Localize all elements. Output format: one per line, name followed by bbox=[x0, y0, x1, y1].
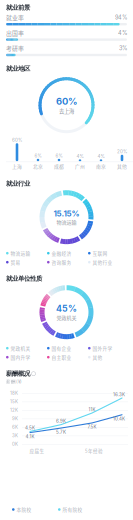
staticText: 其他行业 bbox=[92, 259, 112, 266]
staticText: 互联网 bbox=[92, 250, 107, 257]
staticText: 12K bbox=[10, 407, 18, 413]
staticText: 成都 bbox=[54, 163, 64, 170]
staticText: 就业率 bbox=[6, 13, 24, 22]
staticText: 贸易 bbox=[10, 259, 20, 266]
staticText: 4% bbox=[97, 154, 104, 159]
staticText: 60% bbox=[56, 96, 77, 107]
staticText: 上海 bbox=[12, 163, 22, 170]
staticText: 党政机关 bbox=[56, 314, 76, 321]
staticText: 应届生 bbox=[29, 447, 44, 454]
staticText: 北京 bbox=[33, 163, 43, 170]
staticText: 94% bbox=[115, 14, 127, 21]
staticText: 薪酬(¥) bbox=[6, 379, 22, 384]
staticText: 其他 bbox=[92, 354, 102, 361]
staticText: 就业地区 bbox=[6, 65, 30, 73]
staticText: 党政机关 bbox=[10, 345, 30, 352]
staticText: 15.15% bbox=[53, 209, 79, 218]
staticText: 广州 bbox=[75, 163, 85, 170]
staticText: 4.5K bbox=[25, 425, 35, 431]
staticText: 10.4K bbox=[113, 416, 125, 421]
staticText: 3K bbox=[12, 433, 18, 438]
staticText: 所有院校 bbox=[62, 506, 82, 513]
staticText: 南京 bbox=[96, 163, 106, 170]
staticText: 其他 bbox=[117, 163, 127, 170]
staticText: 本院校 bbox=[16, 506, 31, 513]
staticText: 6.9K bbox=[56, 418, 66, 424]
staticText: 出国率 bbox=[6, 29, 24, 37]
staticText: 去上海 bbox=[59, 107, 74, 115]
staticText: 15K bbox=[10, 399, 18, 404]
staticText: 咨询服务 bbox=[51, 259, 71, 266]
staticText: 物流运输 bbox=[56, 218, 76, 226]
staticText: 18K bbox=[10, 390, 18, 396]
staticText: 20% bbox=[117, 149, 127, 154]
staticText: 国外升学 bbox=[92, 345, 112, 352]
staticText: 11K bbox=[88, 407, 95, 412]
staticText: 薪酬概况 bbox=[6, 370, 30, 378]
staticText: 45% bbox=[56, 303, 77, 314]
staticText: 国有企业 bbox=[51, 345, 71, 352]
staticText: 国内升学 bbox=[10, 354, 30, 361]
staticText: 就业单位性质 bbox=[6, 275, 42, 283]
staticText: 5.7K bbox=[56, 429, 66, 435]
staticText: 60% bbox=[12, 137, 22, 143]
staticText: 6% bbox=[34, 153, 41, 159]
staticText: 就业前景 bbox=[6, 3, 30, 12]
staticText: 4.1K bbox=[25, 434, 34, 439]
staticText: 9K bbox=[12, 416, 18, 421]
staticText: 6K bbox=[12, 424, 18, 430]
staticText: 4% bbox=[76, 154, 83, 159]
staticText: 16.3K bbox=[113, 392, 125, 397]
staticText: 就业行业 bbox=[6, 180, 30, 188]
staticText: 0K bbox=[12, 441, 18, 447]
staticText: 金融经济 bbox=[51, 250, 71, 257]
staticText: 7.5K bbox=[87, 424, 96, 430]
staticText: 自主职业 bbox=[51, 354, 71, 361]
staticText: 3% bbox=[119, 45, 127, 52]
staticText: 5年经验 bbox=[85, 447, 103, 454]
staticText: 物流运输 bbox=[10, 250, 30, 257]
staticText: 考研率 bbox=[6, 44, 24, 53]
staticText: 6% bbox=[55, 153, 62, 159]
staticText: 4% bbox=[118, 29, 127, 36]
